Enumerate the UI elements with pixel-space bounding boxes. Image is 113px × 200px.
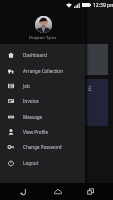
button[interactable]: View Profile (0, 124, 85, 139)
staticText: Job (23, 83, 30, 89)
button[interactable]: Change Password (0, 139, 85, 154)
staticText: Logout (23, 160, 39, 166)
staticText: Change Password (23, 144, 62, 150)
button[interactable]: Logout (0, 155, 85, 170)
staticText: Invoice (23, 98, 39, 104)
button[interactable]: Dashboard (0, 47, 85, 62)
staticText: Arrange Collection (23, 68, 63, 74)
button[interactable]: Back (11, 183, 35, 200)
staticText: View Profile (23, 129, 49, 135)
button[interactable]: Home (46, 183, 70, 200)
button[interactable]: Recents (78, 183, 102, 200)
button[interactable]: Message (0, 109, 85, 124)
button[interactable]: Job (0, 78, 85, 93)
staticText: 12:39 pm (93, 2, 113, 9)
button[interactable]: Invoice (0, 93, 85, 108)
staticText: Dashboard (23, 52, 47, 58)
button[interactable]: Arrange Collection (0, 63, 85, 78)
staticText: Drayton Tyres (29, 35, 57, 41)
staticText: Message (23, 114, 43, 120)
staticText: £ (88, 84, 93, 94)
